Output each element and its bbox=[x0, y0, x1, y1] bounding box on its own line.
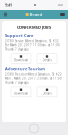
staticText: Download bbox=[14, 58, 28, 62]
staticText: Adventure Tourism bbox=[5, 66, 45, 71]
staticText: Brand bbox=[29, 12, 42, 17]
staticText: 9:41 bbox=[5, 2, 12, 8]
staticText: Thumb 7 days ago bbox=[5, 48, 29, 51]
staticText: Details bbox=[42, 58, 51, 62]
button[interactable]: Download bbox=[11, 87, 31, 97]
staticText: 2/380 Freedom Mitred Extraction, SI $22 bbox=[5, 73, 62, 76]
staticText: Thumb 7 days ago bbox=[5, 81, 29, 84]
button[interactable]: Account bbox=[59, 10, 66, 19]
staticText: For March 20, 2017 11:00am - at 11:00 bbox=[5, 43, 60, 47]
staticText: CONFIRMED JOBS bbox=[17, 24, 51, 30]
staticText: 2/780 Service Mitred Extraction, SI $32 bbox=[5, 39, 59, 43]
staticText: Support Care bbox=[5, 33, 33, 38]
button[interactable]: Details bbox=[37, 54, 57, 64]
button[interactable]: Menu bbox=[2, 10, 9, 19]
staticText: Details bbox=[42, 92, 51, 95]
staticText: Mon - March 20, 2017 3:00am - at 11:00 bbox=[5, 77, 62, 80]
button[interactable]: Download bbox=[11, 54, 31, 64]
staticText: Download bbox=[14, 92, 28, 95]
button[interactable]: Details bbox=[37, 87, 57, 97]
